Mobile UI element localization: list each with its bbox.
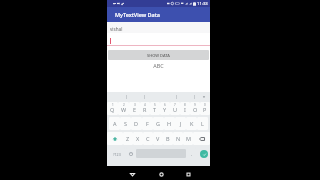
- staticText: H: [167, 120, 172, 127]
- button[interactable]: Recents: [183, 169, 193, 179]
- staticText: T: [153, 106, 157, 113]
- staticText: N: [176, 135, 181, 142]
- staticText: K: [190, 120, 194, 127]
- staticText: F: [146, 120, 149, 127]
- staticText: Q: [110, 106, 115, 113]
- staticText: P: [203, 106, 207, 113]
- button[interactable]: 5: [150, 102, 160, 115]
- button[interactable]: [109, 33, 208, 45]
- staticText: 9: [194, 103, 196, 107]
- button[interactable]: Home: [156, 169, 166, 179]
- button[interactable]: Shift: [107, 132, 123, 145]
- button[interactable]: A: [109, 117, 120, 130]
- staticText: 0: [204, 103, 206, 107]
- button[interactable]: S: [120, 117, 131, 130]
- button[interactable]: Enter: [200, 150, 208, 158]
- button[interactable]: MyTextView Data: [107, 7, 210, 22]
- button[interactable]: 7: [170, 102, 180, 115]
- staticText: 11:33: [197, 1, 208, 7]
- button[interactable]: C: [143, 132, 153, 145]
- button[interactable]: J: [175, 117, 186, 130]
- staticText: O: [193, 106, 198, 113]
- staticText: 6: [164, 103, 166, 107]
- staticText: SHOW DATA: [147, 53, 170, 58]
- staticText: U: [173, 106, 178, 113]
- button[interactable]: 4: [140, 102, 150, 115]
- button[interactable]: G: [153, 117, 164, 130]
- staticText: 7: [174, 103, 176, 107]
- staticText: D: [134, 120, 139, 127]
- button[interactable]: More suggestions: [199, 92, 209, 101]
- button[interactable]: B: [163, 132, 173, 145]
- staticText: vishal: [110, 26, 123, 32]
- staticText: 2: [123, 103, 125, 107]
- staticText: ABC: [107, 62, 210, 69]
- staticText: .: [191, 151, 193, 157]
- staticText: M: [186, 135, 191, 142]
- button[interactable]: Z: [123, 132, 133, 145]
- button[interactable]: 9: [190, 102, 200, 115]
- button[interactable]: D: [131, 117, 142, 130]
- staticText: 3: [134, 103, 136, 107]
- staticText: W: [121, 106, 127, 113]
- staticText: E: [133, 106, 137, 113]
- staticText: S: [124, 120, 128, 127]
- staticText: I: [184, 106, 186, 113]
- button[interactable]: Emoji: [126, 147, 136, 161]
- staticText: V: [156, 135, 160, 142]
- button[interactable]: 3: [129, 102, 140, 115]
- button[interactable]: F: [142, 117, 153, 130]
- button[interactable]: 1: [107, 102, 118, 115]
- button[interactable]: Back: [127, 169, 137, 179]
- staticText: B: [166, 135, 170, 142]
- staticText: Z: [126, 135, 130, 142]
- staticText: ?123: [113, 152, 121, 157]
- button[interactable]: ?123: [108, 147, 125, 161]
- button[interactable]: 8: [180, 102, 190, 115]
- staticText: G: [156, 120, 161, 127]
- button[interactable]: 2: [118, 102, 129, 115]
- button[interactable]: N: [173, 132, 183, 145]
- button[interactable]: M: [183, 132, 193, 145]
- button[interactable]: SHOW DATA: [108, 50, 209, 60]
- button[interactable]: X: [133, 132, 143, 145]
- button[interactable]: 6: [160, 102, 170, 115]
- staticText: MyTextView Data: [115, 11, 161, 18]
- staticText: R: [143, 106, 147, 113]
- staticText: Y: [163, 106, 167, 113]
- staticText: L: [201, 120, 204, 127]
- staticText: C: [146, 135, 150, 142]
- staticText: A: [113, 120, 117, 127]
- button[interactable]: 0: [200, 102, 210, 115]
- button[interactable]: V: [153, 132, 163, 145]
- staticText: 4: [144, 103, 146, 107]
- button[interactable]: Backspace: [193, 132, 210, 145]
- staticText: 8: [184, 103, 186, 107]
- staticText: 5: [154, 103, 156, 107]
- button[interactable]: L: [197, 117, 208, 130]
- staticText: X: [136, 135, 140, 142]
- button[interactable]: H: [164, 117, 175, 130]
- button[interactable]: K: [186, 117, 197, 130]
- staticText: 1: [112, 103, 114, 107]
- staticText: J: [180, 120, 182, 127]
